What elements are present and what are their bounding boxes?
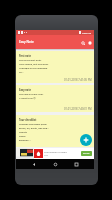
staticText: Towel (19, 135, 26, 138)
staticText: Tickets (19, 131, 27, 134)
staticText: 7:58 AM (82, 31, 92, 34)
button[interactable]: Recents (73, 161, 80, 168)
staticText: Easy Note (19, 40, 34, 44)
staticText: First note (19, 54, 31, 57)
button[interactable]: Back (30, 161, 37, 168)
button[interactable]: First note (16, 51, 94, 83)
staticText: 01-01-2018 7:40:31 PM (64, 107, 92, 111)
staticText: Tour checklist (19, 118, 37, 121)
button[interactable]: Home (52, 161, 59, 168)
button[interactable]: Tour checklist (16, 115, 94, 147)
staticText: Brush, oil, paste, deo and... (19, 127, 50, 130)
staticText: Backhoe ... (19, 139, 32, 142)
button[interactable]: Add note (80, 134, 92, 146)
staticText: Available in my language. (19, 67, 48, 70)
staticText: A must try!!! ☺ (19, 97, 36, 100)
button[interactable]: Easy note (16, 85, 94, 112)
staticText: This is my first note. (19, 59, 42, 62)
button[interactable]: Install (81, 151, 92, 156)
staticText: Workstation Limited (44, 150, 67, 153)
staticText: Easy note (19, 88, 31, 91)
staticText: Free (44, 154, 49, 157)
staticText: This app is really cool. (19, 93, 44, 96)
staticText: Th... (19, 71, 24, 74)
button[interactable]: Search (79, 39, 86, 46)
staticText: Very simple, fast and easy. (19, 63, 49, 66)
button[interactable]: More options (86, 39, 93, 46)
staticText: 01-01-2018 7:41:05 PM (64, 78, 92, 82)
staticText: Charger and power bank (19, 123, 47, 126)
staticText: Install (83, 152, 90, 155)
